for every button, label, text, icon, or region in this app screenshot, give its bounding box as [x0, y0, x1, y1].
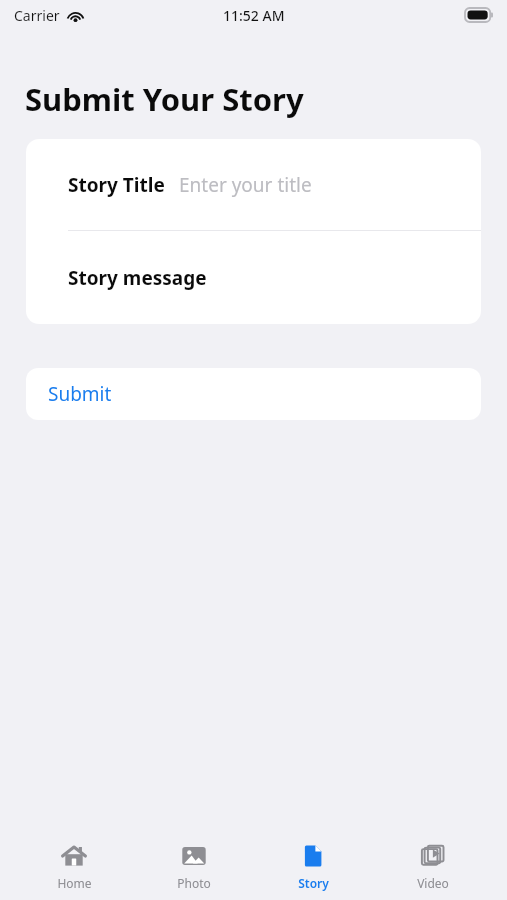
button[interactable]: Story: [268, 835, 358, 897]
other: Home: [59, 841, 89, 871]
staticText: 11:52 AM: [223, 6, 285, 25]
button[interactable]: Submit: [26, 368, 481, 420]
other: Video: [418, 841, 448, 871]
button[interactable]: Video: [388, 835, 478, 897]
other: Story: [298, 841, 328, 871]
staticText: Story: [298, 875, 329, 891]
staticText: Story message: [68, 265, 207, 291]
button[interactable]: Photo: [149, 835, 239, 897]
staticText: Submit: [48, 381, 112, 407]
button[interactable]: Home: [29, 835, 119, 897]
other: Photo: [179, 841, 209, 871]
button[interactable]: Story Title: [26, 139, 481, 230]
staticText: Story Title: [68, 172, 165, 198]
staticText: Enter your title: [179, 172, 312, 198]
staticText: Video: [417, 875, 449, 891]
staticText: Home: [57, 875, 92, 891]
button[interactable]: Story message: [26, 231, 481, 324]
staticText: Carrier: [14, 6, 60, 25]
staticText: Photo: [177, 875, 211, 891]
staticText: Submit Your Story: [25, 78, 304, 120]
